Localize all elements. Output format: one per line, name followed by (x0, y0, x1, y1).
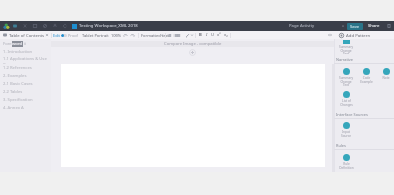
button[interactable] (160, 31, 164, 39)
staticText: 100% (111, 33, 122, 38)
staticText: Edit (53, 33, 60, 38)
staticText: Fore (3, 41, 12, 47)
button[interactable]: Document (10, 21, 20, 31)
staticText: Narrative (336, 57, 354, 62)
button[interactable]: Redo (129, 31, 135, 39)
staticText: Proof (68, 33, 78, 38)
staticText: Summary Change Text Placement (338, 45, 354, 54)
staticText: x₂ (224, 32, 228, 38)
staticText: I (206, 32, 208, 38)
button[interactable]: Summary Change Text Placement (338, 40, 354, 54)
button[interactable]: Undo (122, 31, 128, 39)
staticText: Interface Sources (336, 112, 368, 117)
button[interactable]: Code Example (358, 68, 374, 83)
staticText: 2. Examples (3, 73, 27, 79)
button[interactable]: Block (40, 21, 50, 31)
button[interactable]: More options (386, 23, 392, 29)
button[interactable]: Compare Image - compatible (51, 41, 334, 47)
staticText: 4. Annex A (3, 105, 24, 111)
button[interactable]: Toggle code view (327, 32, 333, 38)
staticText: Input Source (341, 130, 351, 137)
button[interactable]: Fore (0, 40, 51, 48)
button[interactable]: 2.2 Tables (0, 88, 51, 96)
button[interactable]: Table of Contents (0, 31, 51, 39)
button[interactable]: 3. Specification (0, 96, 51, 104)
button[interactable]: Rule Definition (338, 154, 354, 169)
button[interactable]: Edit (53, 31, 78, 39)
button[interactable]: I (204, 31, 210, 39)
button[interactable]: Refresh (60, 21, 70, 31)
button[interactable]: App menu (3, 23, 10, 30)
staticText: 1.1 Applications & Use Cases (3, 56, 51, 64)
button[interactable]: Testing Workspace_XML 2018 (72, 21, 138, 31)
button[interactable]: U (210, 31, 216, 39)
button[interactable]: 2. Examples (0, 72, 51, 80)
staticText: Tablet Portrait (82, 33, 109, 38)
staticText: 3. Specification (3, 97, 33, 103)
button[interactable]: Numbered list (172, 31, 178, 39)
staticText: Summary Change Text (338, 76, 354, 86)
staticText: Rule Definition (339, 162, 354, 169)
button[interactable] (114, 31, 118, 39)
staticText: 1. Introduction (3, 49, 33, 55)
button[interactable]: Input Source (338, 122, 354, 137)
button[interactable]: Tablet Portrait (82, 31, 122, 39)
button[interactable]: List of Changes (338, 91, 354, 106)
button[interactable]: B (197, 31, 203, 39)
staticText: Save (350, 24, 360, 30)
button[interactable]: Highlight colour (184, 31, 190, 39)
other: Close panel (45, 33, 49, 37)
staticText: 2.1 Basic Cases (3, 81, 33, 87)
staticText: Code Example (360, 76, 373, 83)
button[interactable]: 1. Introduction (0, 48, 51, 56)
staticText: List of Changes (340, 99, 353, 106)
staticText: 1.2 References (3, 65, 32, 71)
staticText: B (199, 32, 202, 38)
button[interactable]: Indent (175, 31, 181, 39)
button[interactable]: Formatted text (141, 31, 169, 39)
button[interactable]: Note (378, 68, 394, 80)
staticText: Note (382, 76, 390, 80)
button[interactable]: Summary Change Text (338, 68, 354, 86)
staticText: Add Pattern (346, 32, 371, 38)
button[interactable]: 1.1 Applications & Use Cases (0, 56, 51, 64)
staticText: Share (368, 23, 380, 29)
staticText: Table of Contents (9, 32, 45, 38)
staticText: U (211, 32, 215, 38)
button[interactable]: Users (50, 21, 60, 31)
button[interactable]: Save (347, 23, 363, 30)
staticText: word (12, 41, 23, 47)
button[interactable]: Share (367, 23, 381, 29)
staticText: Page Activity (289, 23, 315, 29)
button[interactable] (190, 31, 194, 39)
button[interactable]: 4. Annex A (0, 104, 51, 112)
button[interactable]: 2.1 Basic Cases (0, 80, 51, 88)
staticText: ii (24, 41, 27, 47)
button[interactable]: Cut (20, 21, 30, 31)
button[interactable]: Save (30, 21, 40, 31)
button[interactable]: x² (216, 31, 222, 39)
button[interactable]: Bullet list (166, 31, 172, 39)
button[interactable]: x₂ (223, 31, 229, 39)
staticText: Compare Image - compatible (164, 41, 222, 47)
staticText: 2.2 Tables (3, 89, 23, 95)
button[interactable]: Page Activity (285, 21, 347, 31)
staticText: x² (217, 32, 221, 38)
button[interactable]: Add page (189, 49, 196, 56)
button[interactable]: Add Pattern (334, 31, 394, 39)
staticText: Rules (336, 143, 346, 148)
staticText: Testing Workspace_XML 2018 (79, 23, 138, 29)
button[interactable]: 1.2 References (0, 64, 51, 72)
staticText: Formatted text (141, 33, 169, 38)
